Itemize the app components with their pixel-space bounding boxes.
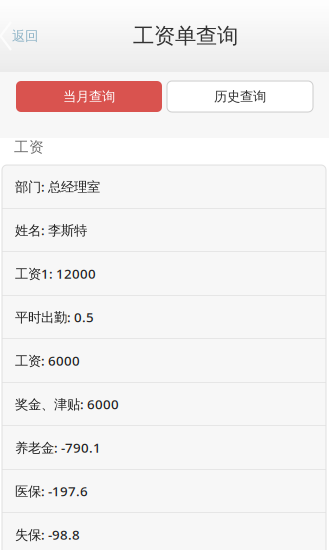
staticText: 平时出勤: 0.5 <box>15 308 94 326</box>
staticText: 返回 <box>12 28 38 44</box>
button[interactable]: 当月查询 <box>16 81 162 112</box>
staticText: 工资 <box>14 138 44 156</box>
staticText: 工资1: 12000 <box>15 265 96 282</box>
staticText: 工资: 6000 <box>15 352 80 369</box>
staticText: 工资单查询 <box>133 23 238 49</box>
staticText: 医保: -197.6 <box>15 482 88 500</box>
button[interactable]: 返回 <box>0 18 56 54</box>
staticText: 部门: 总经理室 <box>15 178 100 195</box>
staticText: 姓名: 李斯特 <box>15 221 87 239</box>
button[interactable]: 历史查询 <box>167 81 313 112</box>
staticText: 养老金: -790.1 <box>15 439 101 456</box>
staticText: 奖金、津贴: 6000 <box>15 395 119 413</box>
staticText: 失保: -98.8 <box>15 526 80 543</box>
staticText: 当月查询 <box>63 88 115 105</box>
staticText: 历史查询 <box>214 88 266 105</box>
